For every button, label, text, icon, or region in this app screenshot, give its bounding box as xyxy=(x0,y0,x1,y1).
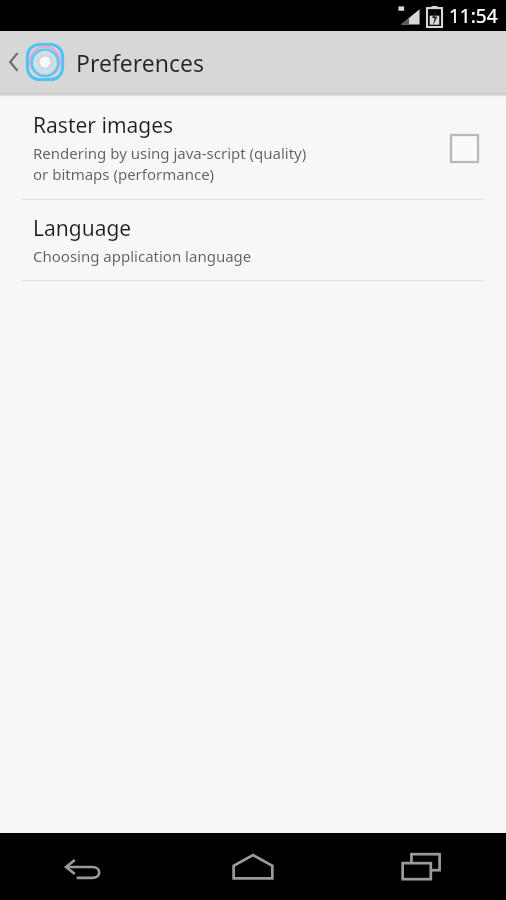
button[interactable]: Recent apps xyxy=(337,833,506,900)
button[interactable]: Home xyxy=(168,833,337,900)
staticText: Raster images xyxy=(33,111,174,140)
staticText: Preferences xyxy=(76,47,205,78)
staticText: Language xyxy=(33,214,132,243)
button[interactable]: Raster images xyxy=(0,97,506,199)
other: Navigate up xyxy=(6,49,22,75)
staticText: Choosing application language xyxy=(33,246,252,266)
button[interactable]: Raster images toggle xyxy=(444,128,484,168)
button[interactable]: Navigate up xyxy=(0,31,506,93)
button[interactable]: Language xyxy=(0,200,506,280)
staticText: Rendering by using java-script (quality)… xyxy=(33,143,307,185)
staticText: 11:54 xyxy=(449,3,498,29)
button[interactable]: Back xyxy=(0,833,168,900)
